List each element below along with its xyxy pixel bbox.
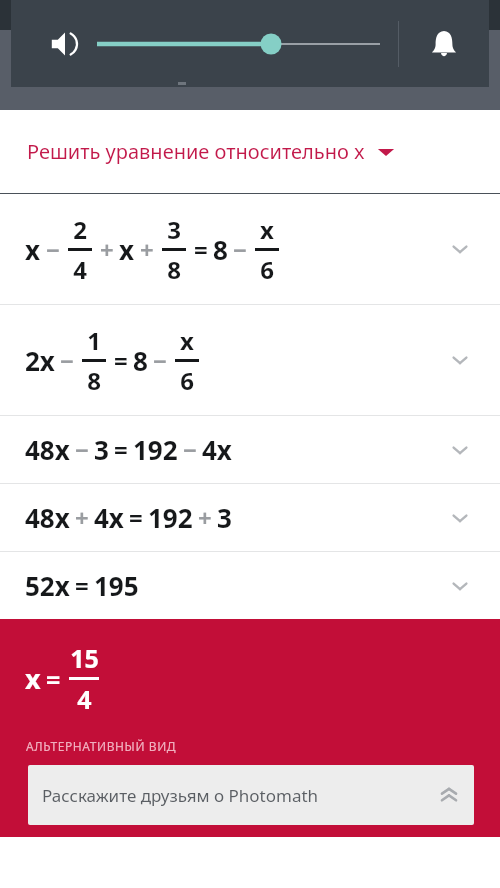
staticText: 8: [133, 343, 148, 378]
staticText: 1: [87, 324, 101, 357]
staticText: −: [60, 344, 74, 377]
staticText: x: [119, 232, 135, 267]
staticText: 192: [133, 432, 178, 467]
staticText: =: [129, 501, 143, 534]
staticText: +: [75, 501, 89, 534]
staticText: −: [233, 233, 247, 266]
button[interactable]: Ringer mode: [399, 0, 489, 87]
button[interactable]: 48x: [0, 416, 500, 483]
button[interactable]: Расскажите друзьям о Photomath: [28, 765, 474, 825]
staticText: =: [75, 569, 89, 602]
staticText: 3: [217, 500, 232, 535]
button[interactable]: Volume: [43, 22, 87, 66]
button[interactable]: 48x: [0, 484, 500, 551]
staticText: 8: [87, 364, 101, 397]
staticText: −: [75, 433, 89, 466]
staticText: 8: [167, 253, 181, 286]
staticText: АЛЬТЕРНАТИВНЫЙ ВИД: [26, 738, 177, 754]
staticText: =: [114, 433, 128, 466]
staticText: 4x: [202, 432, 232, 467]
staticText: =: [194, 233, 208, 266]
button[interactable]: Volume slider: [97, 22, 380, 66]
staticText: x: [180, 324, 194, 357]
staticText: x: [25, 232, 41, 267]
staticText: 4: [77, 682, 92, 716]
button[interactable]: x: [0, 194, 500, 304]
staticText: 52x: [25, 568, 70, 603]
staticText: 192: [148, 500, 193, 535]
staticText: x: [25, 660, 41, 697]
staticText: −: [183, 433, 197, 466]
staticText: 8: [213, 232, 228, 267]
staticText: 6: [260, 253, 274, 286]
staticText: 3: [94, 432, 109, 467]
staticText: 2x: [25, 343, 55, 378]
staticText: −: [153, 344, 167, 377]
staticText: 6: [180, 364, 194, 397]
staticText: 3: [167, 213, 181, 246]
staticText: 195: [94, 568, 139, 603]
staticText: =: [114, 344, 128, 377]
staticText: +: [140, 233, 154, 266]
staticText: +: [198, 501, 212, 534]
staticText: 4x: [94, 500, 124, 535]
staticText: 48x: [25, 500, 70, 535]
staticText: 15: [70, 641, 99, 675]
staticText: x: [260, 213, 274, 246]
button[interactable]: 2x: [0, 305, 500, 415]
staticText: =: [46, 662, 61, 696]
button[interactable]: 52x: [0, 552, 500, 619]
staticText: −: [46, 233, 60, 266]
staticText: Расскажите друзьям о Photomath: [42, 784, 319, 807]
staticText: 4: [73, 253, 87, 286]
staticText: +: [100, 233, 114, 266]
staticText: 2: [73, 213, 87, 246]
button[interactable]: Решить уравнение относительно x: [0, 110, 500, 193]
staticText: 48x: [25, 432, 70, 467]
staticText: Решить уравнение относительно x: [27, 138, 365, 165]
